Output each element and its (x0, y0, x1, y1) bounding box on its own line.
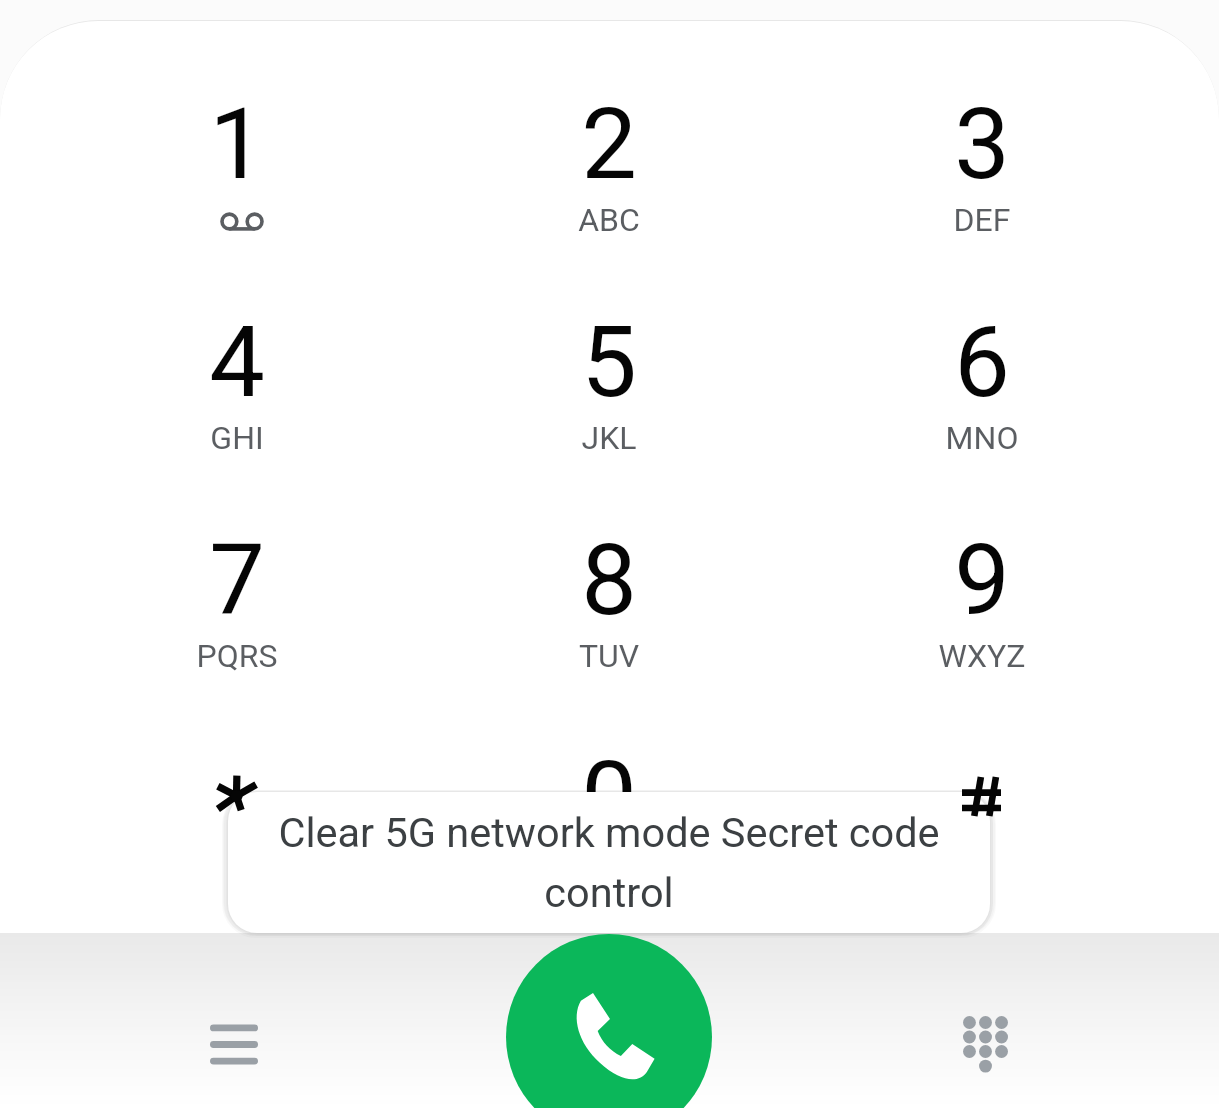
button[interactable]: 3 (872, 66, 1092, 266)
staticText: 1 (127, 86, 347, 202)
staticText: 7 (127, 522, 347, 638)
staticText: 9 (872, 522, 1092, 638)
button[interactable]: 8 (499, 502, 719, 702)
staticText: WXYZ (872, 637, 1092, 675)
staticText: 3 (872, 86, 1092, 202)
staticText: ABC (499, 201, 719, 239)
button[interactable]: Dialpad (920, 979, 1050, 1108)
staticText: PQRS (127, 637, 347, 675)
button[interactable]: Pound (872, 719, 1092, 919)
button[interactable]: 5 (499, 284, 719, 484)
button[interactable]: 1 (127, 66, 347, 266)
staticText: GHI (127, 419, 347, 457)
staticText: 4 (127, 304, 347, 420)
staticText: 6 (872, 304, 1092, 420)
staticText: Clear 5G network mode Secret code contro… (258, 808, 960, 917)
staticText: DEF (872, 201, 1092, 239)
button[interactable]: 7 (127, 502, 347, 702)
staticText: 2 (499, 86, 719, 202)
staticText: TUV (499, 637, 719, 675)
staticText: 5 (499, 304, 719, 420)
button[interactable]: 4 (127, 284, 347, 484)
staticText: JKL (499, 419, 719, 457)
button[interactable]: Call (506, 934, 712, 1108)
button[interactable]: Clear 5G network mode Secret code contro… (228, 792, 990, 933)
button[interactable]: Star (127, 719, 347, 919)
button[interactable]: 9 (872, 502, 1092, 702)
staticText: 8 (499, 522, 719, 638)
button[interactable]: 0 (499, 719, 719, 919)
staticText: + (499, 854, 719, 892)
staticText: 0 (499, 739, 719, 855)
button[interactable]: 6 (872, 284, 1092, 484)
button[interactable]: 2 (499, 66, 719, 266)
button[interactable]: Call history (169, 979, 299, 1108)
staticText: MNO (872, 419, 1092, 457)
